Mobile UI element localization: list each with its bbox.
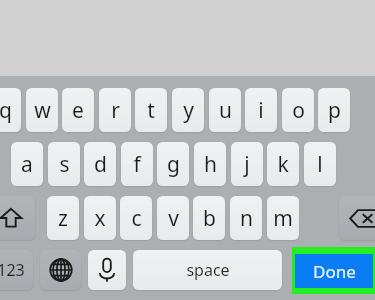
staticText: k (277, 150, 289, 179)
staticText: space (186, 259, 230, 281)
staticText: a (21, 150, 33, 179)
staticText: s (59, 150, 70, 179)
button[interactable]: d (84, 142, 116, 186)
staticText: z (58, 204, 68, 233)
staticText: v (168, 204, 179, 233)
button[interactable]: n (230, 196, 262, 240)
staticText: Done (313, 260, 356, 283)
button[interactable]: i (245, 88, 277, 132)
button[interactable]: space (133, 250, 282, 290)
staticText: p (328, 96, 341, 125)
button[interactable]: a (11, 142, 43, 186)
staticText: i (258, 96, 264, 125)
staticText: t (147, 96, 155, 125)
button[interactable]: p (318, 88, 350, 132)
button[interactable]: s (48, 142, 80, 186)
staticText: l (317, 150, 323, 179)
button[interactable]: o (282, 88, 314, 132)
button[interactable]: h (194, 142, 226, 186)
staticText: u (219, 96, 232, 125)
button[interactable]: Shift (0, 196, 35, 240)
button[interactable]: e (62, 88, 94, 132)
button[interactable]: v (157, 196, 189, 240)
staticText: y (183, 96, 194, 125)
staticText: r (111, 96, 120, 125)
button[interactable]: Backspace (339, 196, 375, 240)
staticText: n (240, 204, 253, 233)
staticText: o (292, 96, 305, 125)
staticText: g (167, 150, 180, 179)
button[interactable]: y (172, 88, 204, 132)
button[interactable]: u (209, 88, 241, 132)
staticText: 123 (0, 259, 25, 281)
button[interactable]: t (135, 88, 167, 132)
staticText: b (203, 204, 216, 233)
staticText: e (72, 96, 84, 125)
staticText: c (131, 204, 142, 233)
staticText: f (133, 150, 141, 179)
button[interactable]: z (47, 196, 79, 240)
staticText: w (34, 96, 51, 125)
button[interactable]: w (26, 88, 58, 132)
staticText: m (273, 204, 293, 233)
button[interactable]: f (121, 142, 153, 186)
button[interactable]: r (99, 88, 131, 132)
button[interactable]: m (267, 196, 299, 240)
button[interactable]: j (231, 142, 263, 186)
button[interactable]: 123 (0, 250, 33, 290)
button[interactable]: k (267, 142, 299, 186)
button[interactable]: Done (292, 247, 375, 294)
button[interactable]: g (157, 142, 189, 186)
staticText: d (94, 150, 107, 179)
staticText: q (0, 96, 12, 125)
button[interactable]: b (193, 196, 225, 240)
button[interactable]: q (0, 88, 21, 132)
button[interactable]: c (120, 196, 152, 240)
staticText: j (244, 150, 250, 179)
button[interactable]: Dictate (88, 250, 126, 290)
staticText: x (94, 204, 106, 233)
button[interactable]: l (304, 142, 336, 186)
staticText: h (204, 150, 217, 179)
button[interactable]: x (84, 196, 116, 240)
button[interactable]: Switch keyboard (40, 250, 81, 290)
